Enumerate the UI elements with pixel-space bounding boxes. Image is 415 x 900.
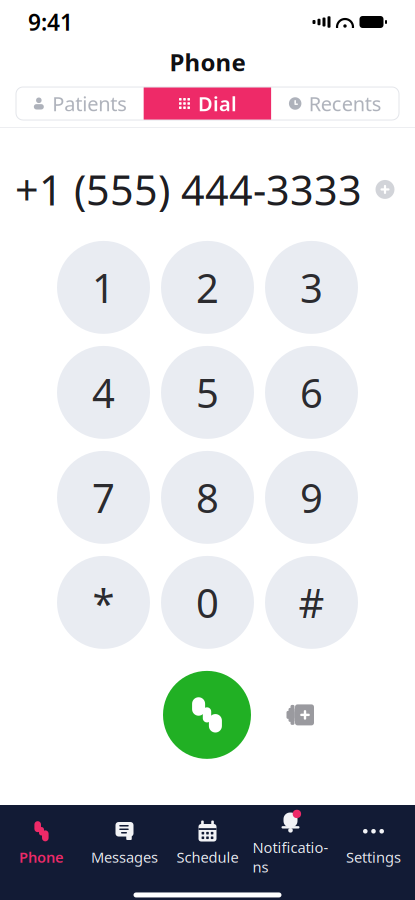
staticText: Dial <box>198 90 237 117</box>
button[interactable]: 5 <box>161 346 254 439</box>
staticText: 1 <box>92 261 115 314</box>
staticText: Settings <box>346 847 401 867</box>
button[interactable]: Phone <box>0 812 83 875</box>
staticText: Phone <box>169 46 245 78</box>
button[interactable]: 3 <box>265 241 358 334</box>
button[interactable]: 2 <box>161 241 254 334</box>
staticText: 4 <box>92 366 115 419</box>
staticText: 5 <box>196 366 219 419</box>
staticText: 8 <box>196 471 219 524</box>
button[interactable]: Recents <box>271 87 399 120</box>
staticText: 6 <box>300 366 323 419</box>
button[interactable]: Messages <box>83 812 166 875</box>
staticText: 7 <box>92 471 115 524</box>
button[interactable]: Call <box>163 671 251 759</box>
button[interactable]: 1 <box>57 241 150 334</box>
button[interactable]: Notifications <box>249 802 332 884</box>
button[interactable]: 7 <box>57 451 150 544</box>
button[interactable]: 4 <box>57 346 150 439</box>
staticText: Notifications <box>252 837 328 876</box>
staticText: 2 <box>196 261 219 314</box>
staticText: 3 <box>300 261 323 314</box>
button[interactable]: 8 <box>161 451 254 544</box>
staticText: 9 <box>300 471 323 524</box>
button[interactable]: Clear number <box>370 174 400 204</box>
staticText: Messages <box>91 847 158 867</box>
button[interactable]: # <box>265 556 358 649</box>
staticText: Schedule <box>176 847 238 867</box>
staticText: Patients <box>52 90 127 117</box>
button[interactable]: Delete last digit <box>269 684 331 746</box>
button[interactable]: 6 <box>265 346 358 439</box>
button[interactable]: Schedule <box>166 812 249 875</box>
staticText: +1 (555) 444-3333 <box>15 162 362 217</box>
button[interactable]: 9 <box>265 451 358 544</box>
button[interactable]: Patients <box>16 87 144 120</box>
staticText: 0 <box>196 576 219 629</box>
staticText: Phone <box>19 847 64 867</box>
button[interactable]: Settings <box>332 812 415 875</box>
button[interactable]: 0 <box>161 556 254 649</box>
button[interactable]: * <box>57 556 150 649</box>
staticText: * <box>92 576 114 629</box>
staticText: # <box>298 576 324 629</box>
button[interactable]: Dial <box>144 87 271 120</box>
staticText: Recents <box>309 90 382 117</box>
staticText: 9:41 <box>28 7 73 37</box>
